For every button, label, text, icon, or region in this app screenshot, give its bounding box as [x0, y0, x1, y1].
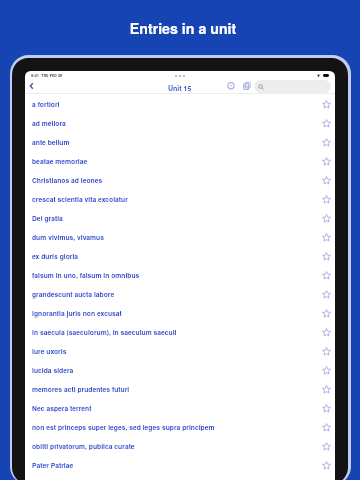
button[interactable]: Favourite: [321, 213, 331, 223]
staticText: non est princeps super leges, sed leges …: [32, 422, 215, 432]
button[interactable]: Favourite: [321, 99, 331, 109]
staticText: in saecula (saeculorum), in saeculum sae…: [32, 327, 177, 337]
button[interactable]: memores acti prudentes futuri: [25, 379, 335, 398]
staticText: 9:41 Thu Feb 29: [31, 72, 63, 78]
staticText: beatae memoriae: [32, 156, 88, 166]
staticText: ignorantia juris non excusat: [32, 308, 122, 318]
button[interactable]: in saecula (saeculorum), in saeculum sae…: [25, 322, 335, 341]
button[interactable]: lucida sidera: [25, 360, 335, 379]
staticText: ad meliora: [32, 118, 66, 128]
button[interactable]: ignorantia juris non excusat: [25, 303, 335, 322]
staticText: falsum in uno, falsum in omnibus: [32, 270, 140, 280]
staticText: Dei gratia: [32, 213, 63, 223]
button[interactable]: Favourite: [321, 156, 331, 166]
button[interactable]: dum vivimus, vivamus: [25, 227, 335, 246]
button[interactable]: Favourite: [321, 422, 331, 432]
button[interactable]: Favourite: [321, 308, 331, 318]
button[interactable]: Favourite: [321, 403, 331, 413]
button[interactable]: Back: [25, 79, 38, 92]
button[interactable]: Favourite: [321, 270, 331, 280]
button[interactable]: beatae memoriae: [25, 151, 335, 170]
staticText: ante bellum: [32, 137, 70, 147]
button[interactable]: Flashcards: [241, 80, 253, 92]
button[interactable]: obliti privatorum, publica curate: [25, 436, 335, 455]
button[interactable]: Favourite: [321, 365, 331, 375]
button[interactable]: non est princeps super leges, sed leges …: [25, 417, 335, 436]
button[interactable]: Favourite: [321, 346, 331, 356]
button[interactable]: Favourite: [321, 232, 331, 242]
button[interactable]: iure uxoris: [25, 341, 335, 360]
button[interactable]: crescat scientia vita excolatur: [25, 189, 335, 208]
staticText: iure uxoris: [32, 346, 67, 356]
button[interactable]: Dei gratia: [25, 208, 335, 227]
staticText: Entries in a unit: [3, 18, 360, 38]
button[interactable]: Favourite: [321, 441, 331, 451]
button[interactable]: Favourite: [321, 194, 331, 204]
button[interactable]: Search: [254, 80, 331, 93]
button[interactable]: ante bellum: [25, 132, 335, 151]
staticText: ex duris gloria: [32, 251, 79, 261]
button[interactable]: ad meliora: [25, 113, 335, 132]
staticText: crescat scientia vita excolatur: [32, 194, 128, 204]
button[interactable]: Favourite: [321, 327, 331, 337]
button[interactable]: a fortiori: [25, 94, 335, 113]
staticText: Christianos ad leones: [32, 175, 103, 185]
staticText: grandescunt aucta labore: [32, 289, 115, 299]
button[interactable]: Help: [225, 80, 237, 92]
button[interactable]: Favourite: [321, 118, 331, 128]
button[interactable]: ex duris gloria: [25, 246, 335, 265]
button[interactable]: falsum in uno, falsum in omnibus: [25, 265, 335, 284]
button[interactable]: Favourite: [321, 137, 331, 147]
button[interactable]: Favourite: [321, 251, 331, 261]
button[interactable]: grandescunt aucta labore: [25, 284, 335, 303]
button[interactable]: Favourite: [321, 289, 331, 299]
staticText: memores acti prudentes futuri: [32, 384, 130, 394]
button[interactable]: Pater Patriae: [25, 455, 335, 474]
button[interactable]: Favourite: [321, 384, 331, 394]
staticText: dum vivimus, vivamus: [32, 232, 104, 242]
staticText: Pater Patriae: [32, 460, 74, 470]
button[interactable]: Christianos ad leones: [25, 170, 335, 189]
button[interactable]: Favourite: [321, 460, 331, 470]
button[interactable]: Favourite: [321, 175, 331, 185]
staticText: a fortiori: [32, 99, 60, 109]
button[interactable]: Nec aspera terrent: [25, 398, 335, 417]
staticText: obliti privatorum, publica curate: [32, 441, 135, 451]
staticText: Unit 15: [168, 83, 192, 93]
staticText: lucida sidera: [32, 365, 74, 375]
staticText: Nec aspera terrent: [32, 403, 92, 413]
